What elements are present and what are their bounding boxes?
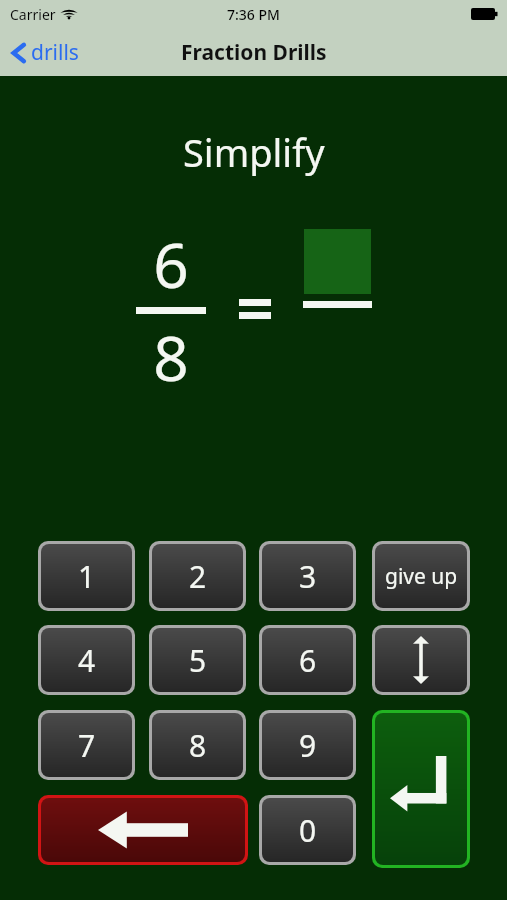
staticText: 4	[78, 640, 96, 681]
staticText: 6	[299, 640, 317, 681]
staticText: Carrier	[10, 5, 56, 24]
button[interactable]: 3	[262, 544, 353, 608]
staticText: 8	[189, 725, 207, 766]
button[interactable]: 2	[152, 544, 243, 608]
staticText: 6	[133, 222, 209, 306]
button[interactable]: Backspace	[41, 798, 245, 862]
button[interactable]: 0	[262, 798, 353, 862]
staticText: give up	[385, 562, 458, 591]
staticText: 0	[299, 810, 317, 851]
staticText: drills	[31, 38, 79, 67]
staticText: 7:36 PM	[227, 5, 280, 24]
staticText: 7	[78, 725, 96, 766]
button[interactable]: 8	[152, 713, 243, 777]
button[interactable]: 7	[41, 713, 132, 777]
button[interactable]: Enter	[375, 713, 467, 865]
staticText: 8	[133, 315, 209, 399]
staticText: 2	[189, 556, 207, 597]
button[interactable]: Swap	[375, 628, 467, 692]
button[interactable]: 5	[152, 628, 243, 692]
button[interactable]: 1	[41, 544, 132, 608]
staticText: Fraction Drills	[181, 38, 327, 67]
staticText: 9	[299, 725, 317, 766]
button[interactable]: 9	[262, 713, 353, 777]
button[interactable]: drills	[12, 38, 79, 67]
staticText: 1	[78, 556, 96, 597]
staticText: Simplify	[183, 126, 325, 178]
button[interactable]: 4	[41, 628, 132, 692]
staticText: 5	[189, 640, 207, 681]
button[interactable]: 6	[262, 628, 353, 692]
staticText: 3	[299, 556, 317, 597]
button[interactable]: give up	[375, 544, 467, 608]
